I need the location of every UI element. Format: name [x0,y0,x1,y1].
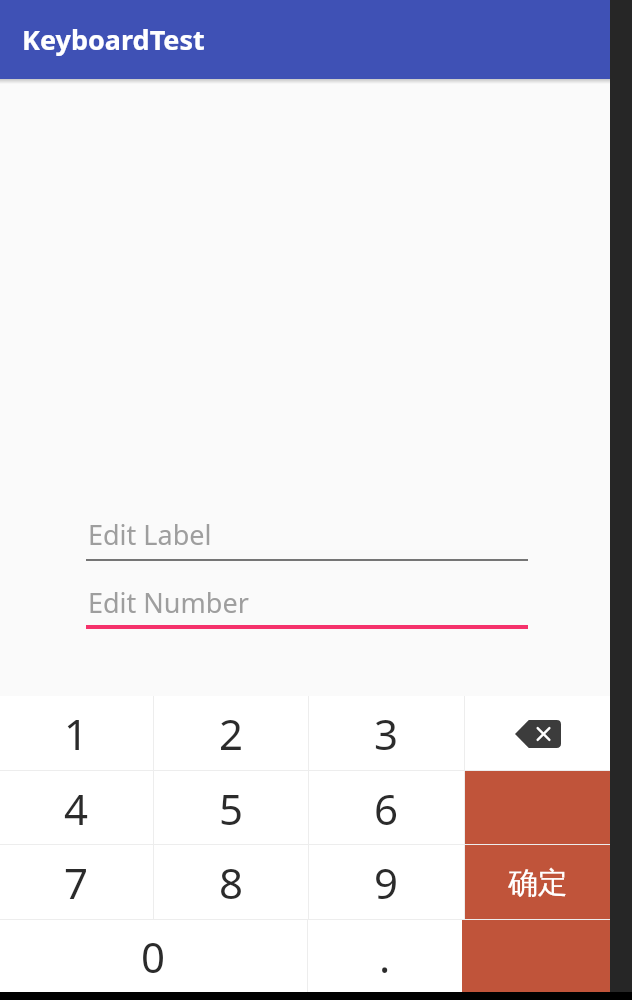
button[interactable]: 8 [154,845,308,920]
button[interactable]: 确定 [465,845,610,920]
button[interactable]: 4 [0,771,153,845]
button[interactable]: . [308,920,462,992]
staticText: 7 [64,854,89,911]
staticText: 0 [141,928,166,985]
staticText: 5 [219,780,244,837]
staticText: 8 [219,854,244,911]
staticText: Edit Number [88,584,249,621]
staticText: . [379,928,391,985]
button[interactable]: 1 [0,696,153,771]
button[interactable]: Edit Label [86,516,528,561]
button[interactable]: KeyboardTest [0,0,610,79]
button[interactable]: 7 [0,845,153,920]
staticText: 确定 [508,864,568,902]
staticText: 3 [374,705,399,762]
staticText: 4 [64,780,89,837]
staticText: 6 [374,780,399,837]
staticText: 2 [219,705,244,762]
staticText: 1 [64,705,89,762]
button[interactable]: 3 [309,696,464,771]
button[interactable]: Backspace [465,696,610,771]
staticText: KeyboardTest [22,21,205,58]
button[interactable] [465,771,610,845]
button[interactable]: 9 [309,845,464,920]
button[interactable]: 0 [0,920,307,992]
button[interactable]: Edit Number [86,584,528,629]
button[interactable]: 5 [154,771,308,845]
button[interactable]: 2 [154,696,308,771]
staticText: 9 [374,854,399,911]
staticText: Edit Label [88,516,212,553]
button[interactable]: 6 [309,771,464,845]
